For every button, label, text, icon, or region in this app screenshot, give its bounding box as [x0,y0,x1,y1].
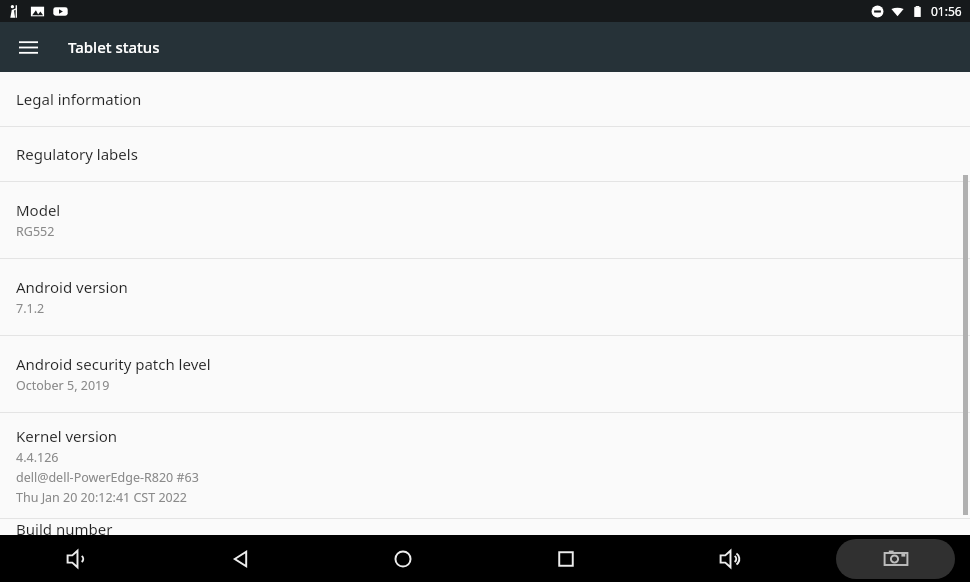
staticText: RG552 [16,223,55,240]
button[interactable]: Screenshot [836,539,955,579]
staticText: Android security patch level [16,354,211,374]
button[interactable]: Model [0,182,970,258]
staticText: 7.1.2 [16,300,45,317]
button[interactable]: Recent apps [542,535,590,582]
staticText: Tablet status [68,37,160,57]
button[interactable]: Kernel version [0,413,970,518]
staticText: dell@dell-PowerEdge-R820 #63 [16,469,199,486]
staticText: October 5, 2019 [16,377,110,394]
staticText: Android version [16,277,128,297]
button[interactable]: Home [379,535,427,582]
button[interactable]: Android security patch level [0,336,970,412]
button[interactable]: Back [217,535,265,582]
button[interactable]: Open navigation menu [8,27,48,67]
button[interactable]: Regulatory labels [0,127,970,181]
staticText: Legal information [16,89,142,109]
staticText: 01:56 [931,3,962,19]
staticText: Build number [16,519,113,535]
button[interactable]: Android version [0,259,970,335]
staticText: Kernel version [16,426,118,446]
staticText: Regulatory labels [16,144,138,164]
staticText: Thu Jan 20 20:12:41 CST 2022 [16,489,188,506]
button[interactable]: Build number [0,519,970,535]
button[interactable]: Volume up [707,535,755,582]
staticText: Model [16,200,61,220]
button[interactable]: Volume down [54,535,102,582]
button[interactable]: Legal information [0,72,970,126]
staticText: 4.4.126 [16,449,59,466]
